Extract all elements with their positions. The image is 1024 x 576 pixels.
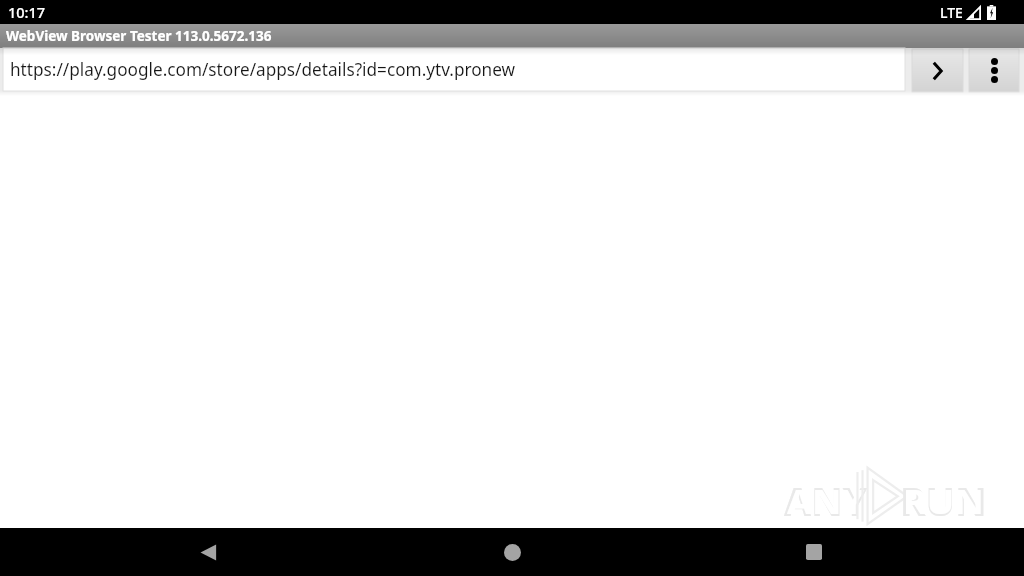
button[interactable]: Recent apps (764, 528, 864, 576)
staticText: ANY (787, 478, 865, 523)
staticText: LTE (940, 3, 963, 22)
button[interactable]: Back (158, 528, 258, 576)
staticText: WebView Browser Tester 113.0.5672.136 (6, 27, 272, 45)
staticText: https://play.google.com/store/apps/detai… (10, 58, 516, 81)
button[interactable]: https://play.google.com/store/apps/detai… (3, 48, 905, 91)
button[interactable]: Go (912, 49, 963, 92)
staticText: 10:17 (8, 2, 46, 22)
button[interactable]: More options (969, 49, 1019, 92)
staticText: ANY (784, 474, 868, 527)
button[interactable]: Home (462, 528, 562, 576)
staticText: RUN (903, 478, 984, 523)
staticText: RUN (900, 474, 987, 527)
